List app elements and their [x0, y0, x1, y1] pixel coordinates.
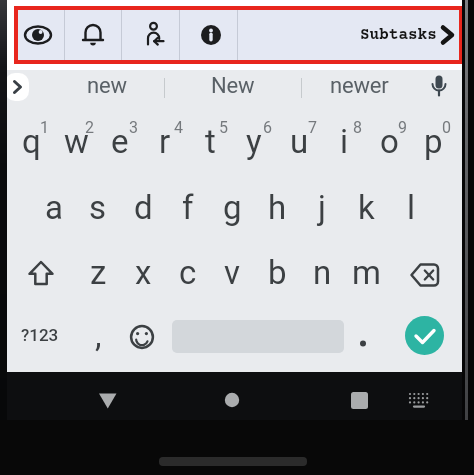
staticText: a — [45, 188, 63, 227]
button[interactable] — [404, 386, 434, 414]
button[interactable]: h — [254, 181, 300, 233]
button[interactable]: new — [62, 68, 152, 104]
staticText: p — [424, 122, 443, 161]
staticText: x — [135, 253, 152, 292]
button[interactable]: g — [209, 181, 255, 233]
button[interactable]: q — [8, 115, 54, 167]
button[interactable]: l — [388, 181, 434, 233]
staticText: s — [89, 188, 107, 227]
button[interactable] — [124, 319, 160, 355]
staticText: d — [134, 188, 153, 227]
button[interactable]: ?123 — [13, 309, 67, 361]
staticText: , — [95, 316, 102, 355]
staticText: 3 — [129, 118, 138, 137]
button[interactable] — [18, 10, 64, 60]
staticText: Subtasks — [360, 26, 437, 44]
button[interactable] — [5, 73, 29, 101]
button[interactable]: i — [321, 115, 367, 167]
button[interactable]: v — [209, 246, 255, 298]
button[interactable] — [122, 10, 179, 60]
button[interactable] — [405, 316, 444, 355]
staticText: r — [159, 122, 171, 161]
staticText: 5 — [219, 118, 228, 137]
button[interactable]: d — [120, 181, 166, 233]
staticText: newer — [330, 73, 389, 99]
button[interactable]: j — [299, 181, 345, 233]
staticText: c — [179, 253, 197, 292]
button[interactable] — [88, 381, 128, 421]
staticText: 1 — [40, 118, 49, 137]
staticText: 8 — [353, 118, 362, 137]
button[interactable] — [212, 380, 252, 420]
button[interactable]: Subtasks — [238, 10, 459, 60]
button[interactable] — [23, 256, 59, 292]
staticText: i — [340, 122, 349, 161]
button[interactable]: k — [343, 181, 389, 233]
button[interactable]: f — [165, 181, 211, 233]
staticText: ?123 — [21, 325, 59, 345]
staticText: New — [211, 73, 255, 99]
button[interactable] — [180, 10, 237, 60]
staticText: n — [313, 253, 332, 292]
button[interactable]: y — [231, 115, 277, 167]
button[interactable]: New — [188, 68, 278, 104]
staticText: u — [290, 122, 309, 161]
button[interactable]: m — [343, 246, 389, 298]
staticText: o — [380, 122, 399, 161]
staticText: g — [223, 188, 242, 227]
button[interactable]: c — [165, 246, 211, 298]
button[interactable]: t — [187, 115, 233, 167]
button[interactable]: r — [142, 115, 188, 167]
button[interactable] — [339, 380, 379, 420]
button[interactable] — [65, 10, 121, 60]
staticText: 7 — [308, 118, 317, 137]
staticText: e — [111, 122, 129, 161]
button[interactable]: x — [120, 246, 166, 298]
staticText: f — [182, 188, 194, 227]
button[interactable]: e — [97, 115, 143, 167]
staticText: 6 — [263, 118, 272, 137]
staticText: h — [268, 188, 287, 227]
staticText: l — [407, 188, 416, 227]
button[interactable]: , — [75, 309, 121, 361]
button[interactable] — [356, 336, 370, 350]
staticText: 2 — [85, 118, 94, 137]
staticText: q — [22, 122, 41, 161]
button[interactable] — [423, 70, 455, 106]
staticText: 9 — [398, 118, 407, 137]
staticText: j — [318, 188, 326, 227]
staticText: new — [87, 73, 127, 99]
staticText: b — [268, 253, 287, 292]
button[interactable]: z — [75, 246, 121, 298]
staticText: v — [224, 253, 240, 292]
button[interactable]: u — [276, 115, 322, 167]
button[interactable]: n — [299, 246, 345, 298]
button[interactable] — [407, 257, 443, 293]
button[interactable]: newer — [304, 68, 414, 104]
button[interactable]: o — [366, 115, 412, 167]
staticText: k — [358, 188, 375, 227]
button[interactable]: b — [254, 246, 300, 298]
staticText: m — [352, 253, 381, 292]
staticText: w — [64, 122, 89, 161]
staticText: y — [246, 122, 262, 161]
button[interactable]: s — [75, 181, 121, 233]
staticText: 4 — [174, 118, 183, 137]
staticText: t — [205, 122, 216, 161]
button[interactable]: p — [410, 115, 456, 167]
button[interactable]: a — [31, 181, 77, 233]
staticText: z — [90, 253, 107, 292]
button[interactable]: w — [53, 115, 99, 167]
staticText: 0 — [442, 118, 451, 137]
